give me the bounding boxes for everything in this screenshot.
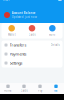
staticText: Me	[54, 89, 58, 92]
staticText: Cards	[20, 89, 27, 92]
button[interactable]: Payments	[1, 49, 62, 58]
button[interactable]: Pay	[32, 85, 48, 92]
staticText: Account Balance	[12, 11, 36, 15]
staticText: Transfers	[9, 42, 26, 48]
staticText: Settings	[9, 60, 22, 66]
button[interactable]: Settings	[1, 58, 62, 67]
staticText: Wallet	[8, 33, 16, 36]
staticText: Cards	[28, 33, 35, 36]
staticText: Payments	[9, 51, 26, 57]
staticText: 9:41	[3, 0, 10, 1]
button[interactable]: Cards	[22, 25, 42, 36]
staticText: ▮▮▮	[58, 0, 61, 1]
staticText: More	[49, 33, 56, 36]
button[interactable]: Wallet	[1, 25, 22, 36]
staticText: Pay	[38, 89, 42, 92]
button[interactable]: More	[42, 25, 62, 36]
staticText: Details	[50, 43, 59, 47]
staticText: Updated just now	[12, 15, 37, 19]
button[interactable]: Home	[0, 85, 16, 92]
button[interactable]: Cards	[16, 85, 32, 92]
staticText: Home	[4, 89, 12, 92]
button[interactable]: Me	[48, 85, 64, 92]
button[interactable]: Transfers	[1, 40, 62, 49]
